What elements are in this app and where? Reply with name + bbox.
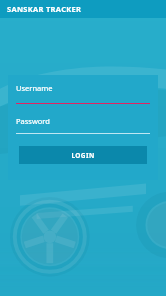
- staticText: SANSKAR TRACKER: [7, 4, 82, 14]
- button[interactable]: Password: [8, 116, 158, 134]
- button[interactable]: Username: [8, 83, 158, 104]
- staticText: Password: [16, 116, 50, 126]
- button[interactable]: LOGIN: [19, 146, 147, 164]
- staticText: Username: [16, 83, 53, 93]
- staticText: LOGIN: [71, 151, 95, 160]
